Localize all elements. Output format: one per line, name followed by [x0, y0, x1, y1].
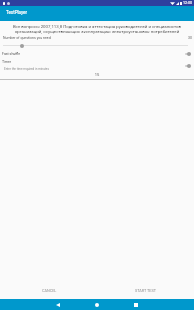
staticText: Enter the time required in minutes	[4, 67, 49, 71]
button[interactable]: CANCEL	[37, 285, 62, 295]
staticText: Number of questions you need	[3, 36, 51, 40]
staticText: Fast shuffle	[2, 52, 21, 56]
button[interactable]: Recent apps	[125, 299, 147, 310]
button[interactable]: Timer	[0, 60, 194, 71]
staticText: Timer	[2, 60, 12, 64]
button[interactable]: START TEST	[130, 285, 162, 295]
staticText: CANCEL	[42, 288, 57, 292]
staticText: 30	[188, 36, 192, 40]
staticText: Все вопросы 2007,113,8 Подготовка и атте…	[7, 24, 187, 34]
button[interactable]: Fast shuffle	[0, 52, 194, 56]
staticText: 15	[0, 72, 194, 77]
staticText: TestPlayer	[6, 10, 28, 15]
staticText: 12:00	[183, 1, 192, 5]
staticText: START TEST	[135, 288, 157, 292]
button[interactable]: Home	[86, 299, 108, 310]
button[interactable]: Back	[47, 299, 69, 310]
